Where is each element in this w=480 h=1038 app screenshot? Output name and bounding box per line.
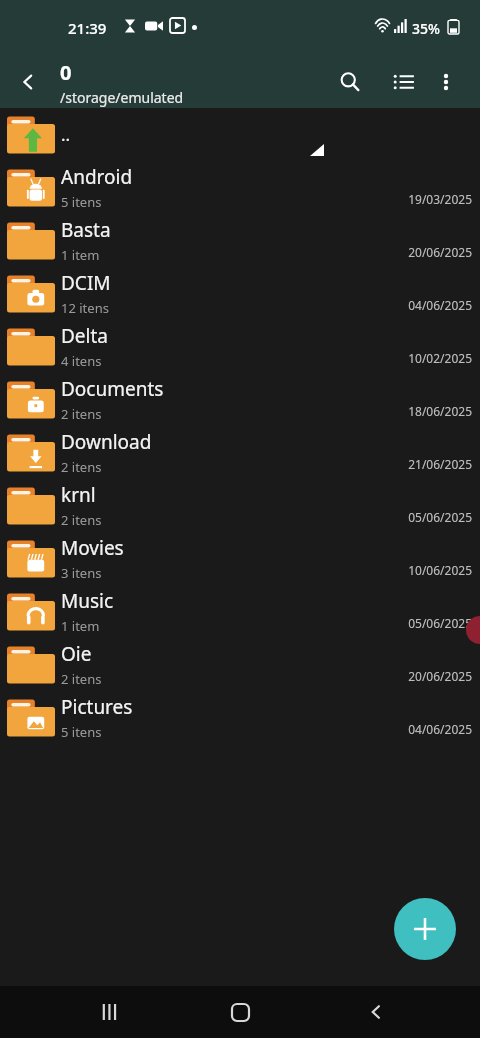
- button[interactable]: Pictures: [0, 691, 480, 744]
- staticText: 1 item: [61, 246, 100, 264]
- staticText: 21:39: [68, 18, 107, 38]
- staticText: 20/06/2025: [408, 244, 472, 260]
- staticText: 05/06/2025: [408, 615, 472, 631]
- button[interactable]: Music: [0, 585, 480, 638]
- staticText: 10/06/2025: [408, 562, 472, 578]
- staticText: 21/06/2025: [408, 456, 472, 472]
- staticText: 10/02/2025: [408, 350, 472, 366]
- button[interactable]: Delta: [0, 320, 480, 373]
- button[interactable]: Basta: [0, 214, 480, 267]
- staticText: krnl: [61, 482, 96, 508]
- staticText: Music: [61, 588, 114, 614]
- button[interactable]: Add: [394, 898, 456, 960]
- button[interactable]: Movies: [0, 532, 480, 585]
- button[interactable]: Documents: [0, 373, 480, 426]
- button[interactable]: krnl: [0, 479, 480, 532]
- staticText: 04/06/2025: [408, 721, 472, 737]
- staticText: 18/06/2025: [408, 403, 472, 419]
- staticText: 5 itens: [61, 193, 102, 211]
- staticText: 2 itens: [61, 670, 102, 688]
- button[interactable]: Android: [0, 161, 480, 214]
- staticText: 04/06/2025: [408, 297, 472, 313]
- button[interactable]: ..: [0, 108, 480, 161]
- button[interactable]: Home: [212, 990, 268, 1034]
- staticText: 20/06/2025: [408, 668, 472, 684]
- staticText: 2 itens: [61, 511, 102, 529]
- staticText: Basta: [61, 217, 111, 243]
- button[interactable]: Back: [8, 62, 48, 102]
- staticText: Movies: [61, 535, 124, 561]
- staticText: Pictures: [61, 694, 133, 720]
- staticText: Delta: [61, 323, 109, 349]
- staticText: 3 itens: [61, 564, 102, 582]
- staticText: 2 itens: [61, 405, 102, 423]
- button[interactable]: Search: [328, 60, 372, 104]
- button[interactable]: Download: [0, 426, 480, 479]
- button[interactable]: More options: [424, 60, 468, 104]
- staticText: Oie: [61, 641, 92, 667]
- staticText: 4 itens: [61, 352, 102, 370]
- staticText: DCIM: [61, 270, 111, 296]
- button[interactable]: Recent apps: [82, 990, 138, 1034]
- staticText: Download: [61, 429, 152, 455]
- button[interactable]: Oie: [0, 638, 480, 691]
- staticText: Android: [61, 164, 133, 190]
- staticText: 12 itens: [61, 299, 109, 317]
- staticText: Documents: [61, 376, 164, 402]
- staticText: 19/03/2025: [408, 191, 472, 207]
- staticText: 35%: [412, 19, 440, 38]
- staticText: 1 item: [61, 617, 100, 635]
- staticText: 05/06/2025: [408, 509, 472, 525]
- staticText: ..: [61, 123, 71, 146]
- button[interactable]: Back: [348, 990, 404, 1034]
- staticText: 5 itens: [61, 723, 102, 741]
- button[interactable]: View mode: [382, 60, 426, 104]
- staticText: /storage/emulated: [60, 88, 184, 107]
- button[interactable]: DCIM: [0, 267, 480, 320]
- staticText: 0: [60, 59, 72, 86]
- staticText: 2 itens: [61, 458, 102, 476]
